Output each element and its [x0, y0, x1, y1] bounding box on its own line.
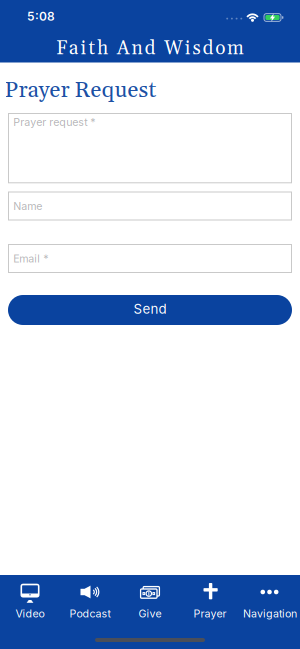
textField[interactable]: Name [8, 191, 292, 220]
staticText: A [117, 37, 130, 61]
button[interactable]: Video [0, 576, 60, 622]
button[interactable]: Prayer [180, 576, 240, 622]
staticText: h [97, 37, 108, 61]
staticText: s [193, 37, 201, 61]
staticText: d [144, 37, 155, 61]
staticText: o [215, 37, 225, 61]
staticText: i [81, 37, 87, 61]
staticText: Prayer [193, 607, 226, 620]
textField[interactable]: Prayer request * [8, 113, 292, 183]
staticText: Navigation [243, 607, 297, 620]
staticText: m [227, 37, 244, 61]
staticText: Prayer Request [4, 76, 156, 105]
staticText: Give [138, 607, 161, 620]
staticText: t [88, 37, 95, 61]
staticText: i [185, 37, 191, 61]
button[interactable]: Give [120, 576, 180, 622]
staticText: F [56, 37, 67, 61]
button[interactable]: Podcast [60, 576, 120, 622]
staticText: n [132, 37, 143, 61]
staticText: Podcast [69, 607, 110, 620]
staticText: a [69, 37, 79, 61]
staticText: Video [15, 607, 44, 620]
staticText: Email * [13, 252, 48, 265]
staticText: Send [133, 301, 166, 317]
textField[interactable]: Email * [8, 244, 292, 273]
staticText: Prayer request * [13, 116, 95, 128]
staticText: 5:08 [27, 9, 55, 23]
staticText: W [164, 37, 183, 61]
staticText: d [202, 37, 213, 61]
button[interactable]: Navigation [240, 576, 300, 622]
button[interactable]: Send [8, 295, 292, 325]
staticText: Name [13, 200, 42, 212]
